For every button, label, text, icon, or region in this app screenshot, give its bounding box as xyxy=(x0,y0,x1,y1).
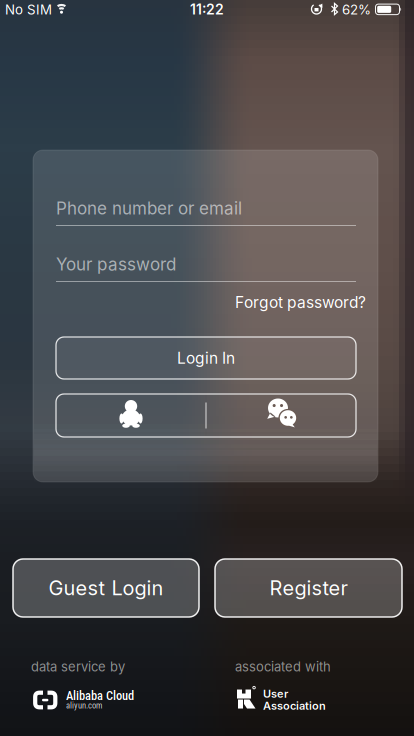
button[interactable]: Log in with WeChat xyxy=(207,394,356,437)
staticText: Register xyxy=(269,576,347,600)
staticText: Guest Login xyxy=(48,576,163,600)
button[interactable]: Register xyxy=(215,559,402,617)
staticText: Phone number or email xyxy=(56,198,242,219)
staticText: data service by xyxy=(31,659,125,675)
staticText: associated with xyxy=(235,659,331,675)
staticText: Association xyxy=(263,699,326,712)
staticText: User xyxy=(263,687,288,700)
staticText: Your password xyxy=(56,254,176,275)
staticText: 11:22 xyxy=(190,1,224,18)
button[interactable]: Guest Login xyxy=(13,559,199,617)
staticText: Login In xyxy=(177,349,235,367)
staticText: Forgot password? xyxy=(235,293,366,312)
staticText: aliyun.com xyxy=(66,700,102,710)
staticText: Alibaba Cloud xyxy=(66,688,134,703)
button[interactable]: Login In xyxy=(56,337,356,379)
staticText: 62% xyxy=(342,1,371,18)
button[interactable]: Your password xyxy=(56,256,356,283)
button[interactable]: Forgot password? xyxy=(235,293,366,312)
staticText: No SIM xyxy=(5,1,52,18)
button[interactable]: Phone number or email xyxy=(56,200,356,227)
button[interactable]: Log in with QQ xyxy=(56,394,205,437)
